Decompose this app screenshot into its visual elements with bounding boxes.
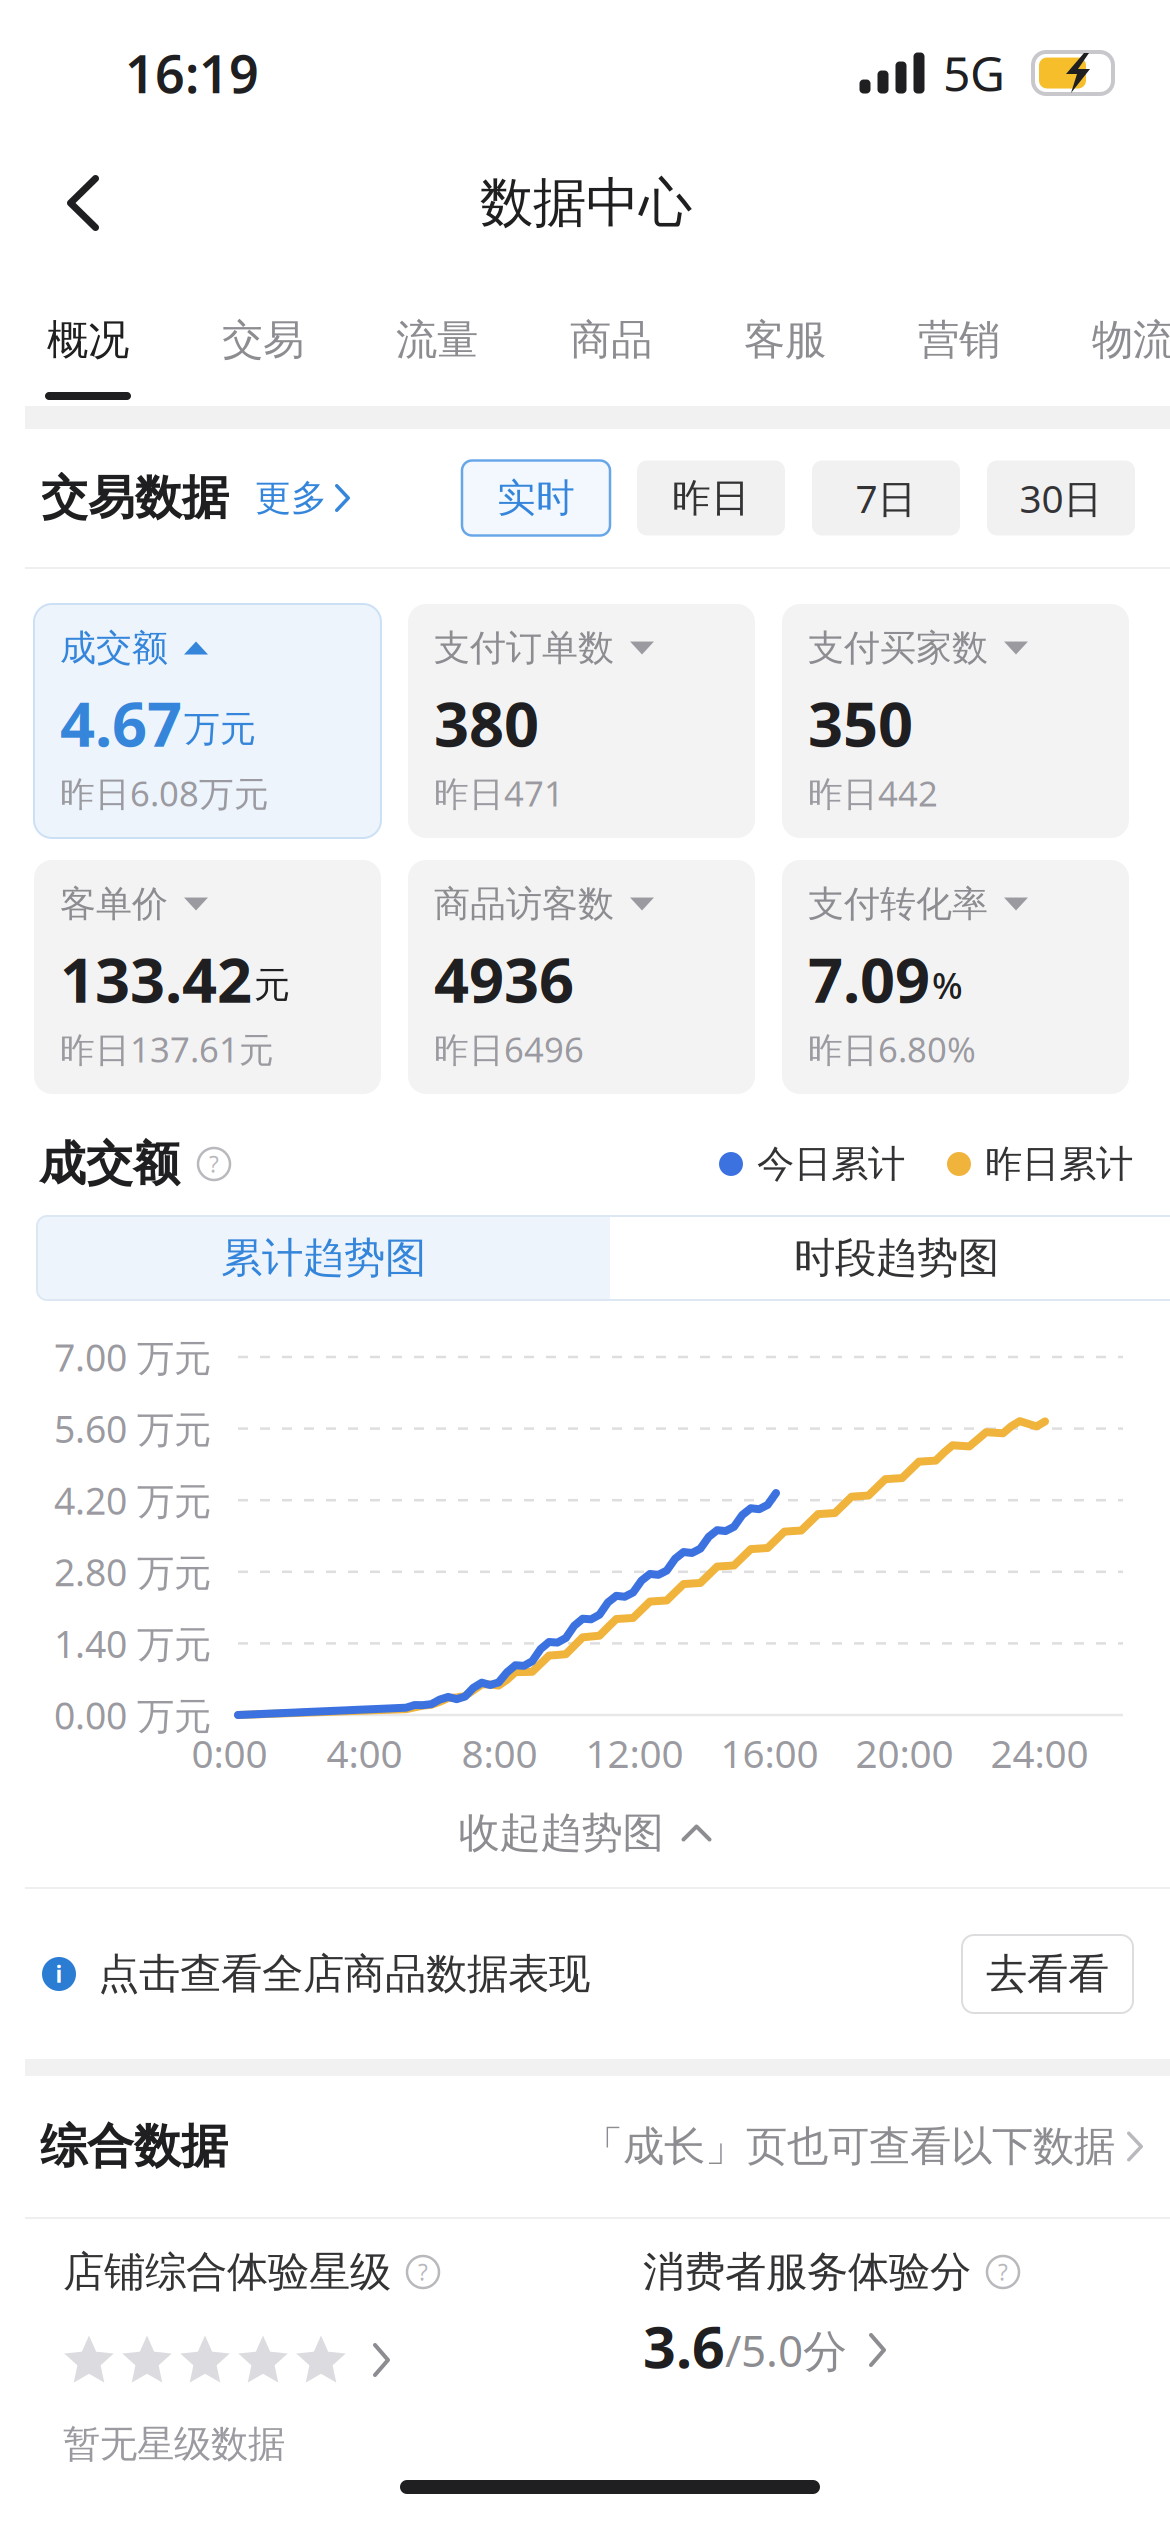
staticText: 16:19 bbox=[125, 38, 259, 108]
staticText: 成交额 bbox=[39, 1135, 180, 1193]
staticText: 昨日6.08万元 bbox=[60, 770, 269, 816]
staticText: ? bbox=[209, 1149, 219, 1179]
staticText: 20:00 bbox=[855, 1727, 953, 1779]
staticText: 昨日6496 bbox=[434, 1026, 584, 1072]
staticText: 5.60 万元 bbox=[54, 1404, 211, 1453]
staticText: 0:00 bbox=[191, 1727, 267, 1779]
staticText: 昨日 bbox=[672, 474, 750, 522]
staticText: 4:00 bbox=[326, 1727, 402, 1779]
staticText: 4.20 万元 bbox=[54, 1475, 211, 1525]
staticText: 物流 bbox=[1092, 315, 1170, 365]
staticText: 消费者服务体验分 bbox=[643, 2247, 971, 2297]
button[interactable]: 返回 bbox=[25, 148, 141, 258]
staticText: 交易 bbox=[222, 315, 304, 365]
button[interactable]: 商品 bbox=[524, 260, 698, 406]
staticText: 7日 bbox=[855, 472, 916, 524]
button[interactable]: 流量 bbox=[350, 260, 524, 406]
staticText: 流量 bbox=[396, 315, 478, 365]
staticText: 昨日137.61元 bbox=[60, 1026, 274, 1072]
button[interactable]: 概况 bbox=[0, 260, 176, 406]
button[interactable]: 交易 bbox=[176, 260, 350, 406]
staticText: 收起趋势图 bbox=[458, 1808, 663, 1858]
button[interactable]: 商品访客数 bbox=[408, 860, 755, 1094]
staticText: ? bbox=[998, 2257, 1008, 2287]
staticText: ? bbox=[418, 2257, 428, 2287]
button[interactable]: 客服 bbox=[698, 260, 872, 406]
staticText: 客单价 bbox=[60, 882, 168, 926]
staticText: 350 bbox=[808, 682, 913, 764]
button[interactable]: 更多 bbox=[229, 460, 360, 536]
staticText: 累计趋势图 bbox=[221, 1233, 426, 1283]
staticText: 0.00 万元 bbox=[54, 1690, 211, 1740]
staticText: 24:00 bbox=[990, 1727, 1088, 1779]
staticText: 16:00 bbox=[720, 1727, 818, 1779]
staticText: 万元 bbox=[184, 707, 256, 751]
staticText: 昨日6.80% bbox=[808, 1026, 976, 1072]
staticText: 4936 bbox=[434, 938, 574, 1020]
button[interactable]: 物流 bbox=[1046, 260, 1170, 406]
staticText: 点击查看全店商品数据表现 bbox=[98, 1949, 590, 1999]
staticText: 7.00 万元 bbox=[54, 1332, 211, 1382]
staticText: 8:00 bbox=[461, 1727, 537, 1779]
button[interactable]: 实时 bbox=[462, 460, 610, 535]
staticText: 支付订单数 bbox=[434, 626, 614, 670]
button[interactable]: 支付转化率 bbox=[782, 860, 1129, 1094]
button[interactable]: 时段趋势图 bbox=[610, 1216, 1170, 1300]
staticText: 商品访客数 bbox=[434, 882, 614, 926]
staticText: 客服 bbox=[744, 315, 826, 365]
button[interactable]: 支付买家数 bbox=[782, 604, 1129, 838]
staticText: 133.42 bbox=[60, 938, 252, 1020]
staticText: 1.40 万元 bbox=[54, 1619, 211, 1668]
staticText: 时段趋势图 bbox=[794, 1233, 999, 1283]
staticText: 2.80 万元 bbox=[54, 1547, 211, 1597]
button[interactable]: 30日 bbox=[987, 460, 1135, 535]
staticText: 数据中心 bbox=[480, 170, 692, 236]
staticText: /5.0分 bbox=[725, 2321, 847, 2379]
staticText: 营销 bbox=[918, 315, 1000, 365]
staticText: 昨日累计 bbox=[985, 1141, 1133, 1187]
button[interactable]: 7日 bbox=[812, 460, 960, 535]
button[interactable]: 客单价 bbox=[34, 860, 381, 1094]
staticText: 12:00 bbox=[585, 1727, 683, 1779]
staticText: 成交额 bbox=[60, 626, 168, 670]
staticText: 昨日442 bbox=[808, 770, 938, 816]
staticText: 更多 bbox=[255, 476, 327, 520]
staticText: 商品 bbox=[570, 315, 652, 365]
staticText: 支付买家数 bbox=[808, 626, 988, 670]
button[interactable]: 营销 bbox=[872, 260, 1046, 406]
staticText: 380 bbox=[434, 682, 539, 764]
staticText: 概况 bbox=[47, 315, 129, 365]
button[interactable]: 去看看 bbox=[962, 1935, 1133, 2013]
staticText: 支付转化率 bbox=[808, 882, 988, 926]
staticText: 5G bbox=[943, 41, 1005, 105]
staticText: 店铺综合体验星级 bbox=[63, 2247, 391, 2297]
button[interactable]: 查看店铺综合体验星级 bbox=[63, 2331, 643, 2389]
staticText: 去看看 bbox=[986, 1949, 1109, 1999]
staticText: 4.67 bbox=[60, 682, 182, 764]
staticText: 综合数据 bbox=[40, 2118, 228, 2175]
staticText: 交易数据 bbox=[41, 469, 229, 527]
button[interactable]: 支付订单数 bbox=[408, 604, 755, 838]
button[interactable]: 收起趋势图 bbox=[25, 1779, 1170, 1887]
button[interactable]: 成交额 bbox=[34, 604, 381, 838]
staticText: 「成长」页也可查看以下数据 bbox=[582, 2121, 1115, 2172]
staticText: 暂无星级数据 bbox=[63, 2421, 285, 2467]
staticText: 今日累计 bbox=[757, 1141, 905, 1187]
staticText: 30日 bbox=[1019, 472, 1102, 524]
staticText: 元 bbox=[254, 963, 290, 1007]
button[interactable]: 昨日 bbox=[637, 460, 785, 535]
staticText: 7.09 bbox=[808, 938, 930, 1020]
button[interactable]: 3.6 bbox=[643, 2315, 1165, 2377]
staticText: 昨日471 bbox=[434, 770, 564, 816]
button[interactable]: 「成长」页也可查看以下数据 bbox=[582, 2103, 1143, 2189]
button[interactable]: 累计趋势图 bbox=[37, 1216, 610, 1300]
staticText: 实时 bbox=[497, 474, 575, 522]
staticText: i bbox=[55, 1959, 62, 1989]
staticText: 3.6 bbox=[643, 2308, 725, 2384]
staticText: % bbox=[932, 961, 963, 1009]
